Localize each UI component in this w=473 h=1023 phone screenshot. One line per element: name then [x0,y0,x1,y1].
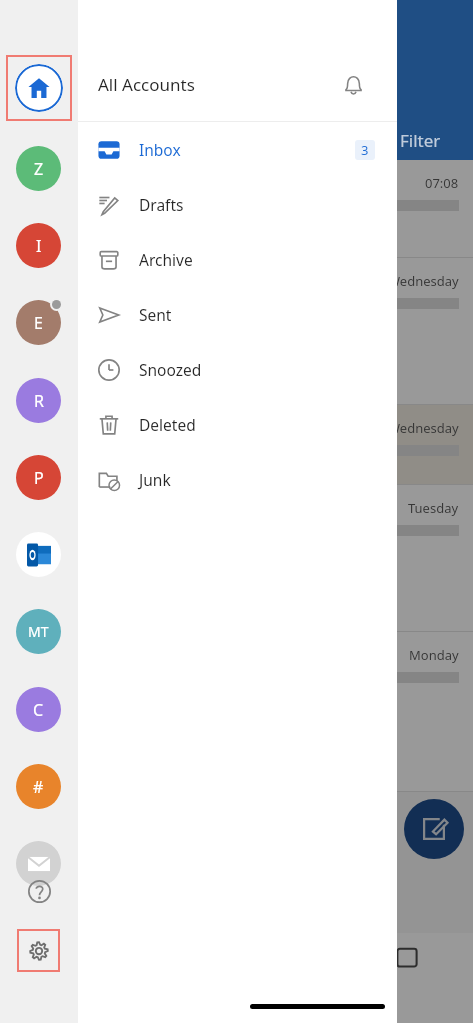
button[interactable]: Snoozed [78,342,397,397]
staticText: # [33,776,44,798]
staticText: Z [34,158,44,180]
button[interactable]: Junk [78,452,397,507]
staticText: I [36,235,42,257]
staticText: Snoozed [139,359,202,380]
button[interactable]: Home, all accounts [6,55,72,121]
button[interactable]: Account MT [16,609,61,654]
button[interactable]: Sent [78,287,397,342]
staticText: Tuesday [408,499,459,517]
button[interactable]: Account P [16,455,61,500]
button[interactable]: Account I [16,223,61,268]
staticText: All Accounts [98,73,195,96]
button[interactable]: Deleted [78,397,397,452]
button[interactable]: Account # [16,764,61,809]
button[interactable]: Inbox [78,122,397,177]
button[interactable]: Compose [404,799,464,859]
staticText: E [34,312,43,334]
button[interactable]: Monday [0,632,473,792]
staticText: Wednesday [388,419,459,437]
button[interactable]: 07:08 [0,160,473,258]
button[interactable]: Wednesday [0,405,473,485]
button[interactable]: Tuesday [0,485,473,632]
staticText: Filter [400,129,441,152]
staticText: 07:08 [425,174,459,192]
button[interactable]: Archive [78,232,397,287]
staticText: Junk [139,469,171,490]
button[interactable]: Account C [16,687,61,732]
button[interactable]: Outlook account [16,532,61,577]
staticText: Archive [139,249,193,270]
button[interactable]: Notifications [331,63,375,107]
button[interactable]: All Accounts [78,48,397,121]
button[interactable]: Account Z [16,146,61,191]
staticText: P [34,467,44,489]
button[interactable]: Settings [17,929,60,972]
staticText: Inbox [139,139,181,160]
button[interactable]: More accounts [16,841,61,886]
staticText: Monday [409,646,459,664]
staticText: Deleted [139,414,196,435]
staticText: 3 [361,141,369,159]
staticText: R [34,390,44,412]
button[interactable]: Help [20,872,58,910]
button[interactable]: Account E [16,300,61,345]
staticText: C [33,699,44,721]
staticText: Drafts [139,194,184,215]
staticText: Sent [139,304,172,325]
staticText: MT [28,622,49,641]
staticText: Wednesday [388,272,459,290]
button[interactable]: Drafts [78,177,397,232]
button[interactable]: Wednesday [0,258,473,405]
button[interactable]: Account R [16,378,61,423]
